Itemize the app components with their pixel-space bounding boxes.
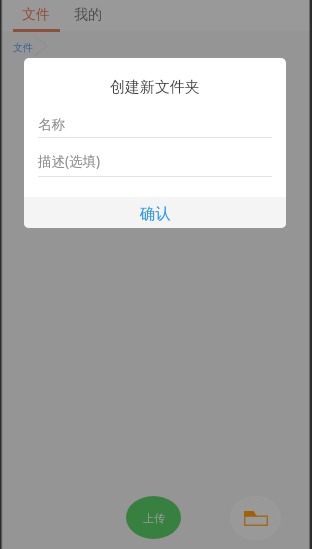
button[interactable]: 我的 xyxy=(62,0,114,30)
staticText: 我的 xyxy=(74,6,102,24)
staticText: 创建新文件夹 xyxy=(24,78,286,97)
button[interactable]: 文件 xyxy=(10,0,62,30)
button[interactable]: 确认 xyxy=(24,197,286,228)
staticText: 确认 xyxy=(140,204,171,224)
button[interactable]: 文件 xyxy=(13,41,33,54)
button[interactable]: 上传 xyxy=(126,496,181,539)
staticText: 上传 xyxy=(143,511,165,525)
staticText: 文件 xyxy=(22,6,50,24)
staticText: 名称 xyxy=(38,116,65,133)
button[interactable]: 新建文件夹 xyxy=(230,496,281,540)
staticText: 描述(选填) xyxy=(38,152,101,170)
staticText: 文件 xyxy=(13,41,33,54)
